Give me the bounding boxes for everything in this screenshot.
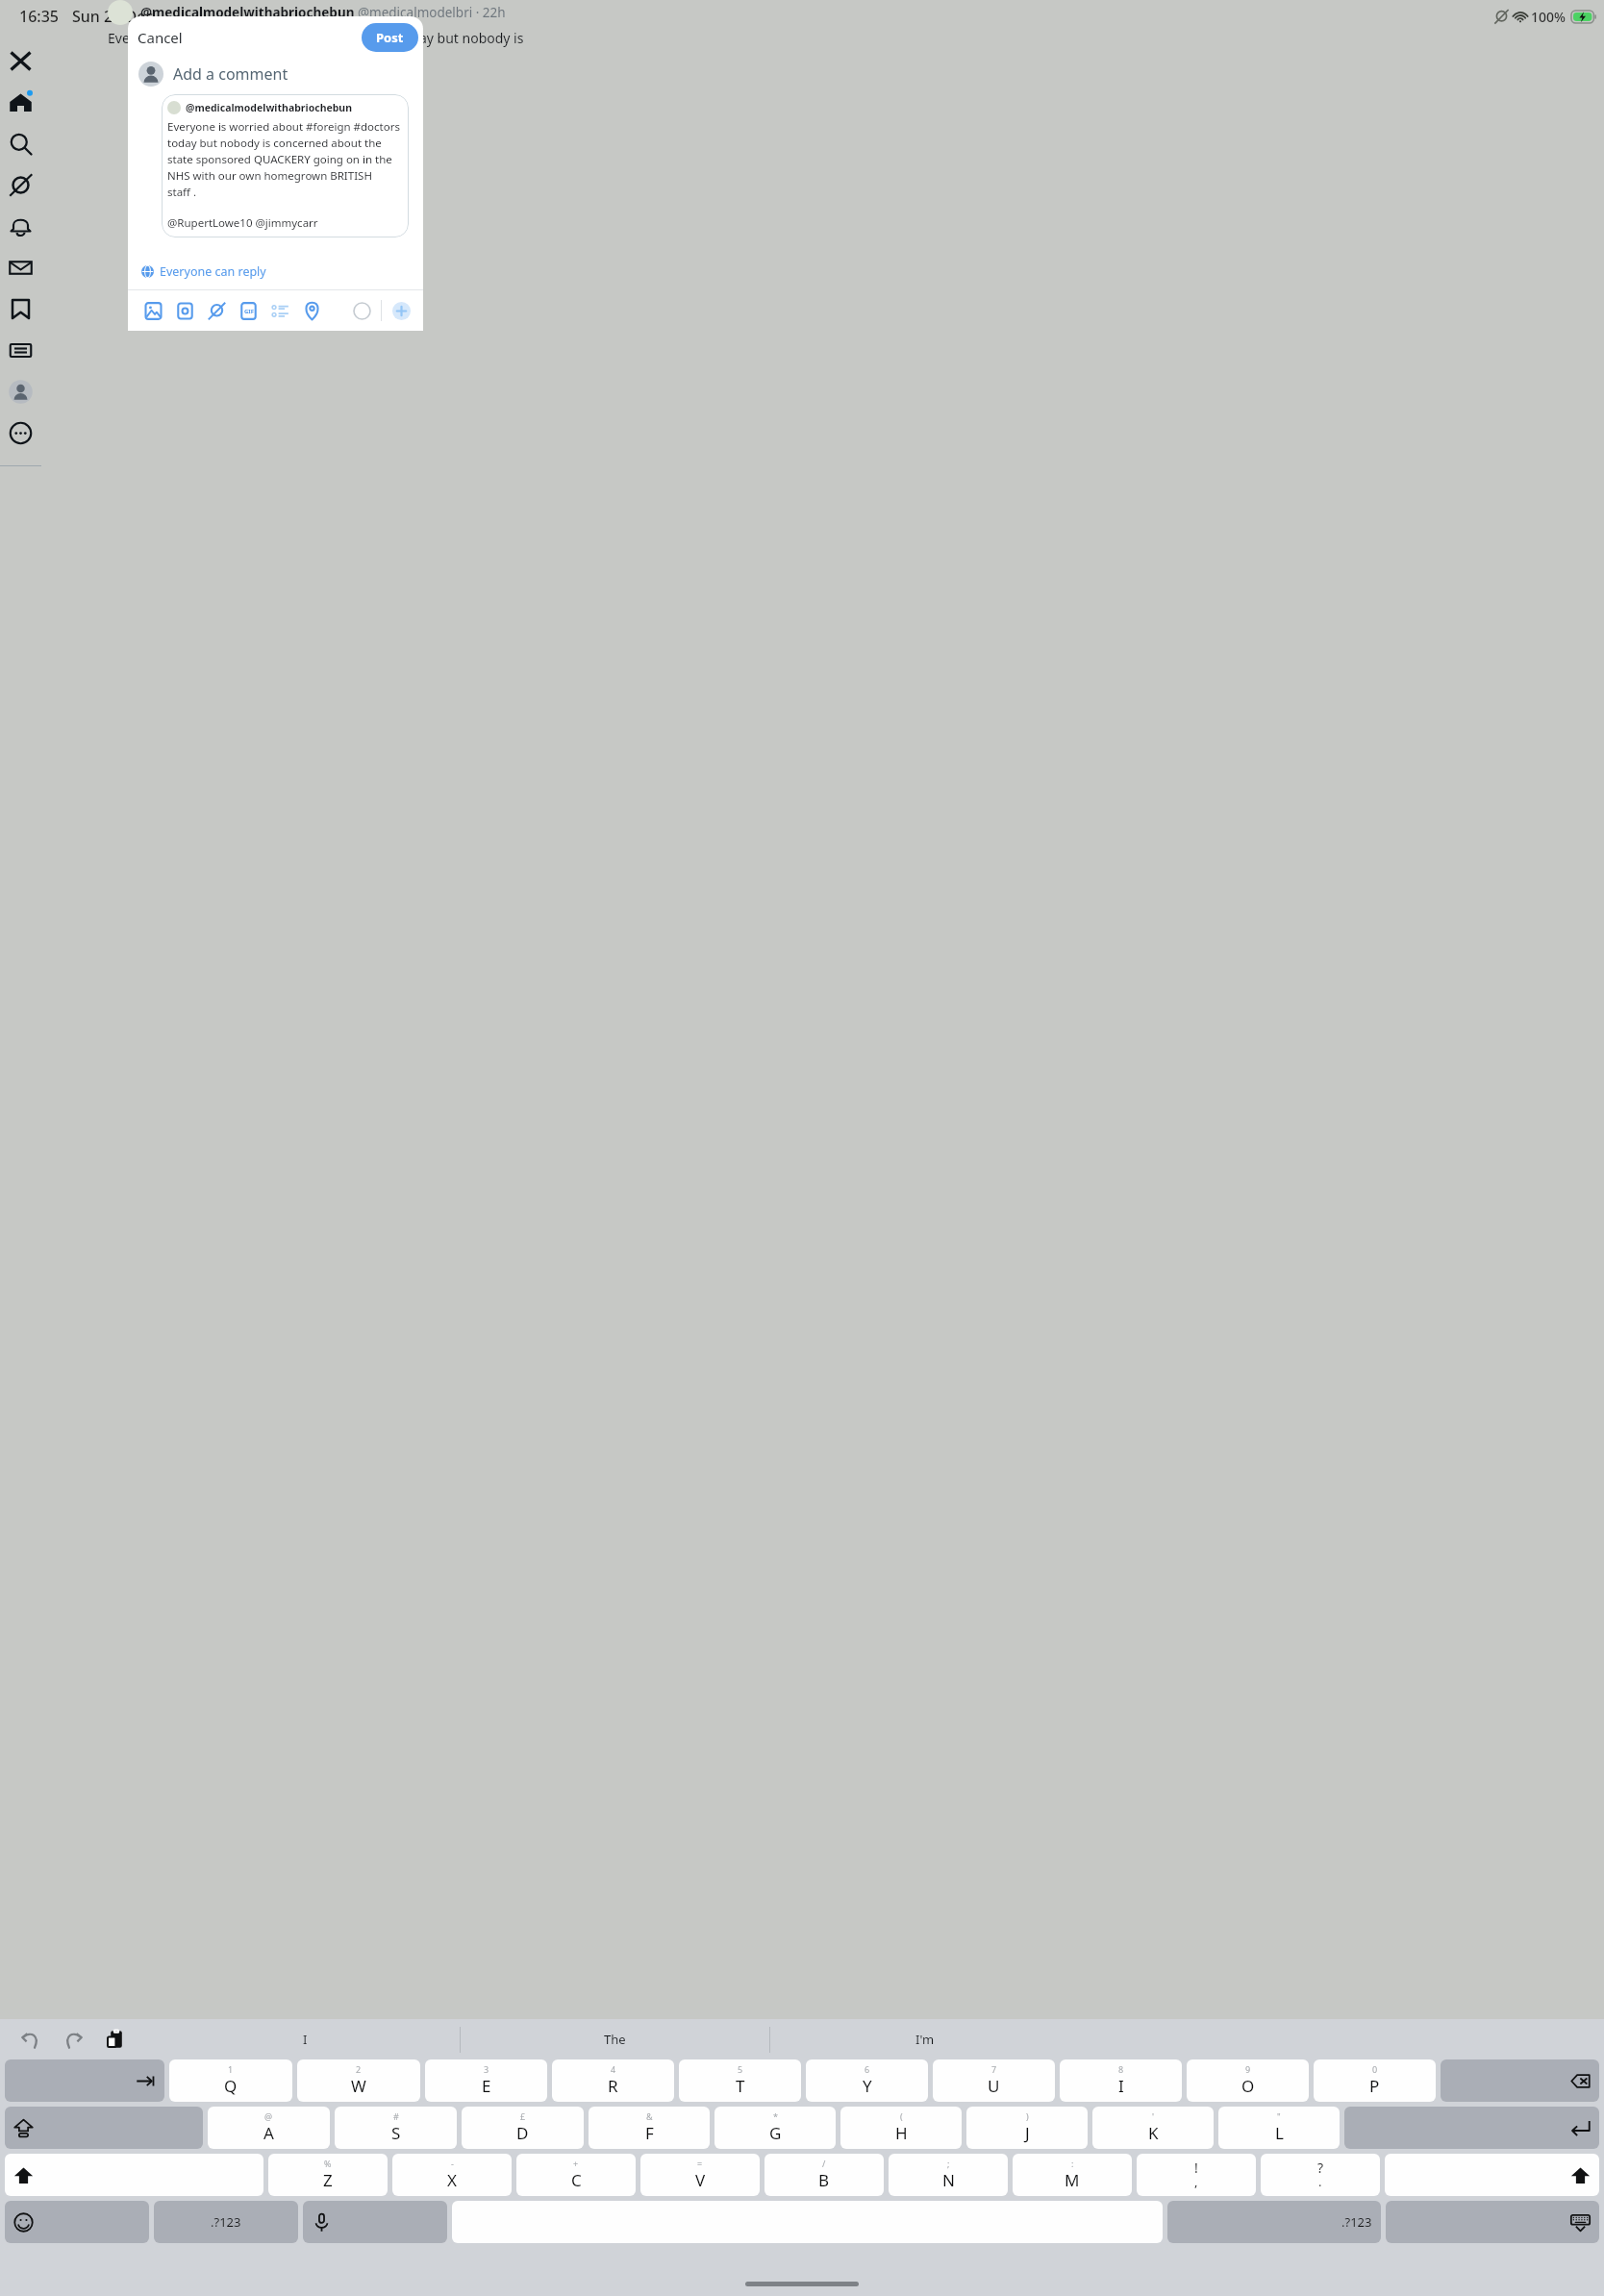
staticText: ! [1194,2159,1198,2177]
button[interactable]: Home [0,82,41,123]
staticText: & [646,2110,653,2122]
staticText: V [695,2169,706,2191]
button[interactable]: @ [208,2107,330,2149]
staticText: I [1118,2075,1124,2097]
button[interactable]: Backspace [1441,2059,1599,2102]
staticText: 100% [1531,8,1566,26]
button[interactable]: Add another post [387,296,415,325]
button[interactable]: : [1013,2154,1132,2196]
staticText: ' [1152,2110,1155,2122]
button[interactable]: % [268,2154,388,2196]
button[interactable]: Notifications [0,206,41,247]
button[interactable]: 2 [297,2059,420,2102]
button[interactable]: 4 [552,2059,674,2102]
staticText: # [393,2110,399,2122]
button[interactable]: " [1218,2107,1340,2149]
staticText: + [573,2158,579,2169]
button[interactable]: Location [296,295,328,327]
button[interactable]: ( [840,2107,962,2149]
button[interactable]: Caps lock [5,2107,203,2149]
button[interactable]: Search [0,123,41,164]
staticText: G [769,2122,782,2144]
staticText: L [1275,2122,1284,2144]
staticText: 16:35 [19,6,59,27]
button[interactable]: Character count [347,296,376,325]
staticText: - [451,2158,454,2169]
button[interactable]: Lists [0,330,41,371]
button[interactable]: Camera [169,295,201,327]
staticText: / [822,2158,826,2169]
button[interactable]: Undo [16,2025,45,2054]
staticText: Q [224,2075,238,2097]
button[interactable]: * [714,2107,836,2149]
button[interactable]: Everyone can reply [138,261,269,283]
staticText: R [608,2075,618,2097]
button[interactable]: ; [889,2154,1008,2196]
staticText: ) [1026,2110,1029,2122]
staticText: F [645,2122,654,2144]
button[interactable]: X [0,40,41,82]
staticText: Sun 28 Dec [72,6,154,27]
staticText: .?123 [1341,2213,1372,2231]
button[interactable]: GIF [233,295,264,327]
button[interactable]: £ [462,2107,584,2149]
button[interactable]: 0 [1314,2059,1436,2102]
button[interactable]: .?123 [154,2201,298,2243]
button[interactable]: Media [138,295,169,327]
button[interactable]: More [0,412,41,454]
button[interactable]: ? [1261,2154,1380,2196]
button[interactable]: @medicalmodelwithabriochebun @medicalmod… [162,94,409,237]
button[interactable]: Return [1344,2107,1599,2149]
staticText: : [1071,2158,1074,2169]
button[interactable]: + [516,2154,636,2196]
staticText: 2 [356,2063,362,2075]
button[interactable]: Poll [264,295,296,327]
button[interactable]: Shift [1385,2154,1599,2196]
staticText: 9 [1245,2063,1251,2075]
button[interactable]: Shift [5,2154,263,2196]
button[interactable]: 3 [425,2059,547,2102]
staticText: 1 [228,2063,234,2075]
button[interactable]: Tab [5,2059,164,2102]
staticText: 4 [611,2063,616,2075]
button[interactable]: 9 [1187,2059,1309,2102]
button[interactable]: Redo [59,2025,88,2054]
button[interactable]: .?123 [1167,2201,1381,2243]
button[interactable]: Grok [0,164,41,206]
button[interactable]: / [764,2154,884,2196]
staticText: " [1277,2110,1281,2122]
staticText: GIF [244,308,254,315]
button[interactable]: I'm [770,2019,1079,2059]
button[interactable]: Paste [101,2025,130,2054]
button[interactable]: Profile [0,371,41,412]
staticText: 6 [865,2063,870,2075]
button[interactable]: # [335,2107,457,2149]
button[interactable]: & [589,2107,710,2149]
button[interactable]: ' [1092,2107,1214,2149]
button[interactable]: 8 [1060,2059,1182,2102]
button[interactable]: Dictation [303,2201,447,2243]
button[interactable]: Cancel [133,24,188,51]
button[interactable]: Grok image [201,295,233,327]
staticText: ; [947,2158,950,2169]
staticText: . [1318,2173,1322,2190]
button[interactable]: 1 [169,2059,292,2102]
button[interactable]: 5 [679,2059,801,2102]
button[interactable]: Messages [0,247,41,288]
button[interactable]: = [640,2154,760,2196]
button[interactable]: The [461,2019,769,2059]
button[interactable]: Emoji [5,2201,149,2243]
button[interactable]: Hide keyboard [1386,2201,1599,2243]
button[interactable]: 7 [933,2059,1055,2102]
button[interactable]: I [151,2019,460,2059]
button[interactable]: Bookmarks [0,288,41,330]
button[interactable]: ! [1137,2154,1256,2196]
button[interactable]: 6 [806,2059,928,2102]
button[interactable]: - [392,2154,512,2196]
staticText: Z [323,2169,333,2191]
button[interactable]: Post [362,23,418,52]
staticText: .?123 [211,2213,241,2231]
staticText: 8 [1118,2063,1124,2075]
button[interactable]: ) [966,2107,1088,2149]
